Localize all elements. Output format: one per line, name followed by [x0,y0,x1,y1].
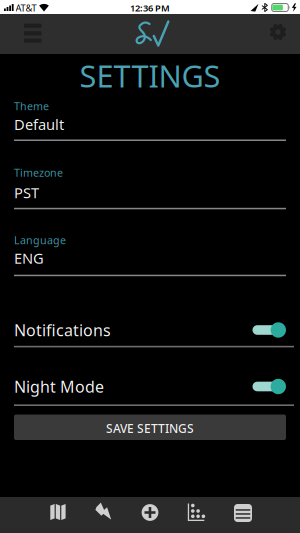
button[interactable] [173,497,219,533]
button[interactable] [0,14,56,54]
staticText: AT&T [15,2,36,14]
button[interactable]: SAVE SETTINGS [14,414,286,440]
button[interactable] [127,497,173,533]
staticText: SAVE SETTINGS [106,420,194,436]
staticText: ENG [14,248,44,268]
staticText: Language [14,233,66,247]
staticText: Timezone [14,165,63,180]
staticText: Theme [14,99,49,113]
button[interactable]: Language [14,230,286,278]
staticText: Default [14,114,64,134]
staticText: PST [14,183,39,202]
staticText: Night Mode [14,376,104,397]
staticText: 12:36 PM [130,2,170,14]
button[interactable] [220,497,266,533]
button[interactable]: Notifications [14,313,286,347]
button[interactable] [80,497,126,533]
staticText: Notifications [14,319,111,341]
staticText: SETTINGS [79,55,220,96]
button[interactable] [34,497,80,533]
button[interactable]: Timezone [14,163,286,211]
button[interactable]: Theme [14,96,286,144]
button[interactable] [251,14,300,54]
button[interactable]: Night Mode [14,369,286,403]
